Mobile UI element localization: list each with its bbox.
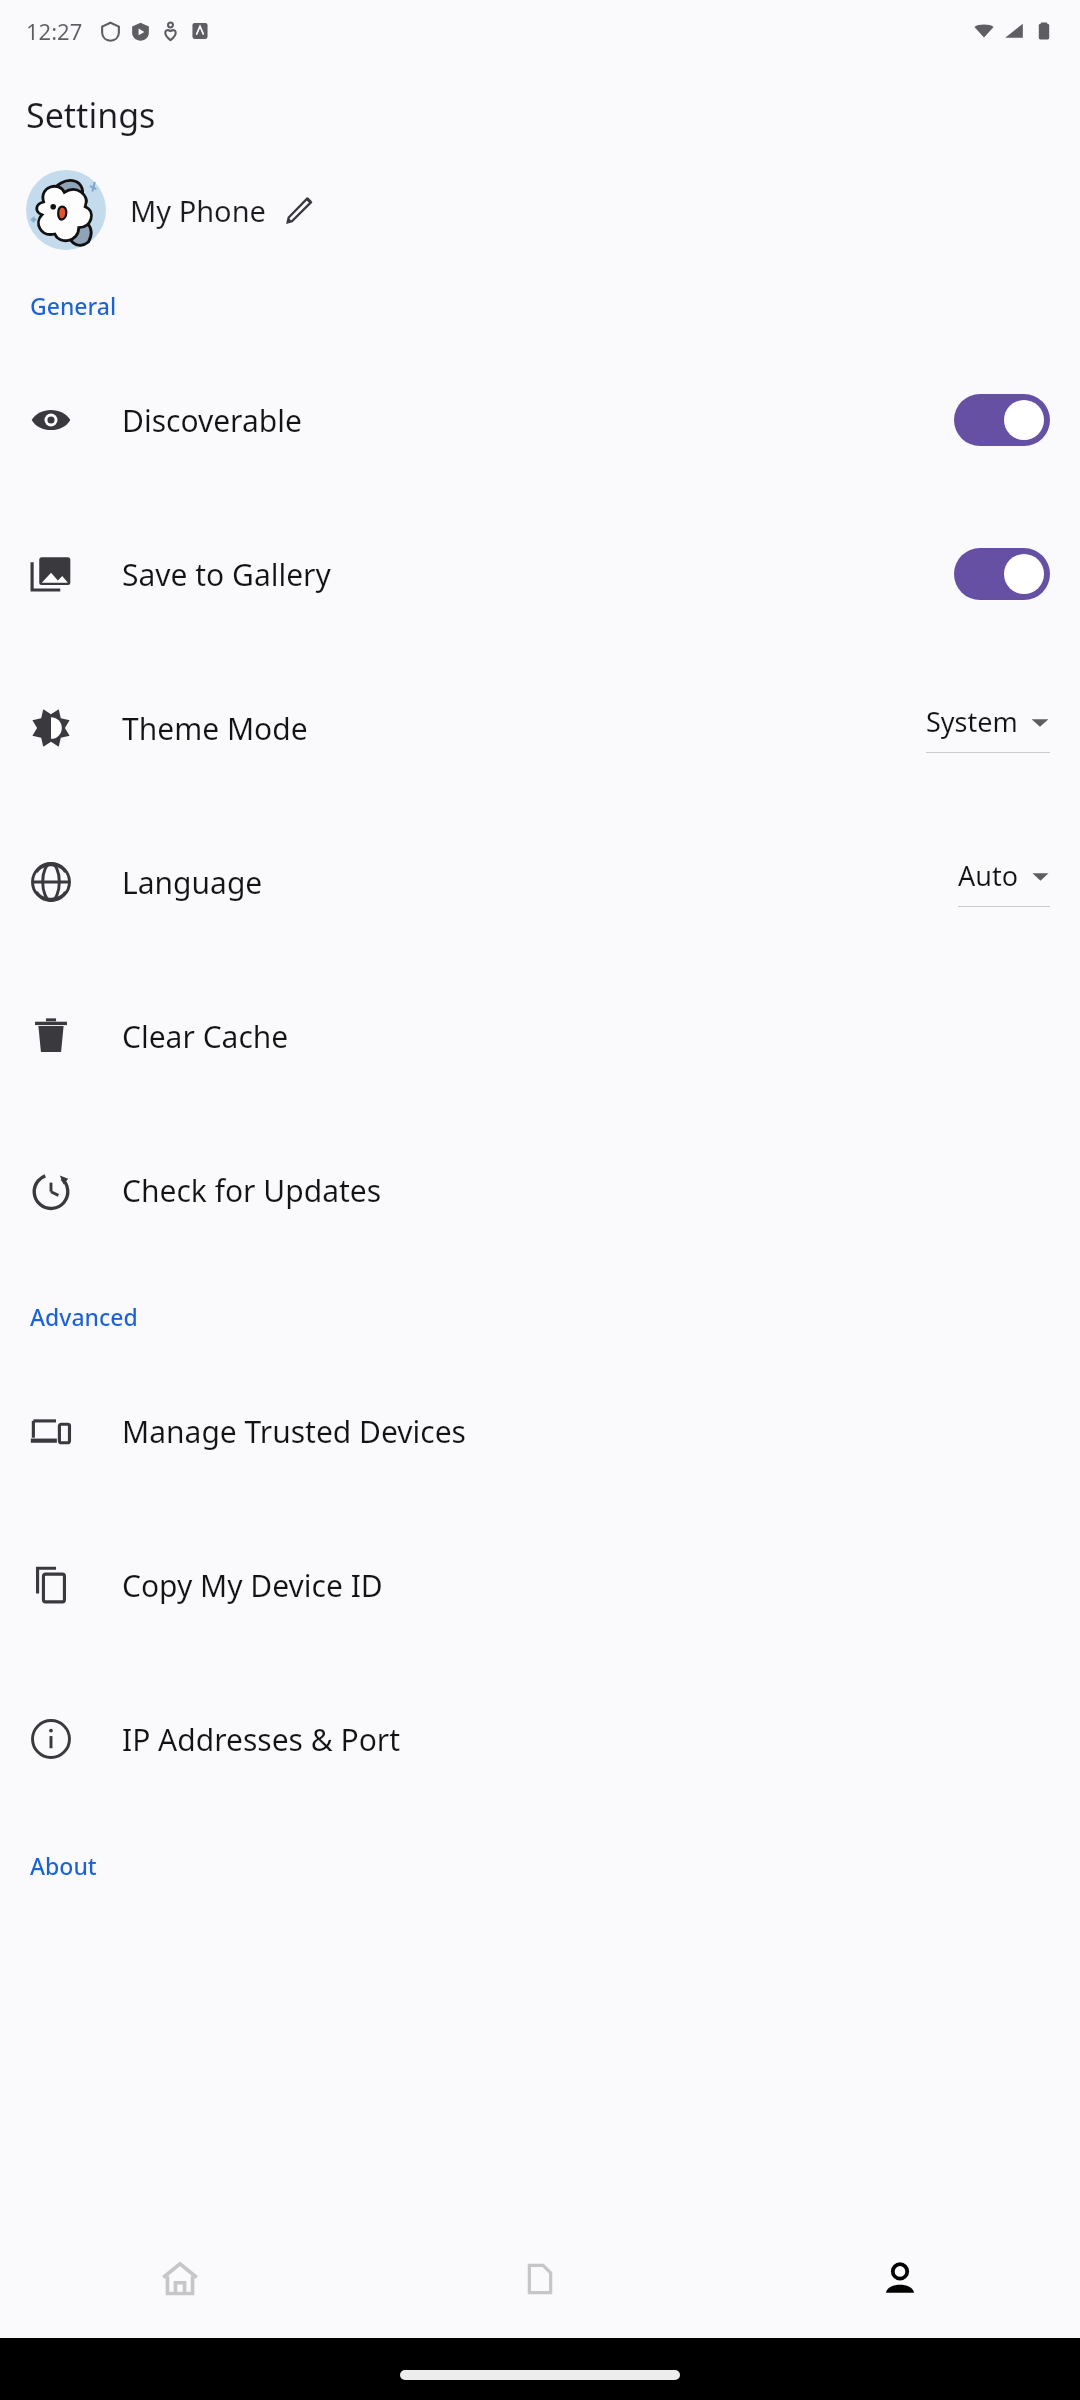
button[interactable]: Clear Cache xyxy=(0,959,1080,1113)
button[interactable]: Check for Updates xyxy=(0,1113,1080,1267)
button[interactable]: Toggle xyxy=(954,548,1050,600)
staticText: Language xyxy=(122,862,958,903)
button[interactable]: Toggle xyxy=(954,394,1050,446)
staticText: System xyxy=(926,703,1018,740)
staticText: Clear Cache xyxy=(122,1016,1050,1057)
staticText: Auto xyxy=(958,857,1019,894)
staticText: Save to Gallery xyxy=(122,554,954,595)
button[interactable]: Home xyxy=(0,2220,360,2338)
button[interactable]: Auto xyxy=(958,857,1050,907)
button[interactable]: Profile xyxy=(720,2220,1080,2338)
button[interactable]: Files xyxy=(360,2220,720,2338)
staticText: Discoverable xyxy=(122,400,954,441)
button[interactable]: Discoverable xyxy=(0,343,1080,497)
staticText: Copy My Device ID xyxy=(122,1565,1050,1606)
staticText: Manage Trusted Devices xyxy=(122,1411,1050,1452)
button[interactable]: Theme Mode xyxy=(0,651,1080,805)
staticText: General xyxy=(30,290,117,321)
staticText: IP Addresses & Port xyxy=(122,1719,1050,1760)
staticText: Theme Mode xyxy=(122,708,926,749)
staticText: My Phone xyxy=(130,191,266,230)
button[interactable]: Manage Trusted Devices xyxy=(0,1354,1080,1508)
button[interactable]: Language xyxy=(0,805,1080,959)
button[interactable]: Save to Gallery xyxy=(0,497,1080,651)
button[interactable]: Copy My Device ID xyxy=(0,1508,1080,1662)
staticText: Advanced xyxy=(30,1301,138,1332)
button[interactable]: Edit device name xyxy=(282,193,316,227)
staticText: About xyxy=(30,1850,97,1881)
staticText: 12:27 xyxy=(26,16,83,46)
button[interactable]: My Phone xyxy=(26,170,1054,250)
staticText: Settings xyxy=(26,92,156,138)
button[interactable]: System xyxy=(926,703,1050,753)
button[interactable]: IP Addresses & Port xyxy=(0,1662,1080,1816)
staticText: Check for Updates xyxy=(122,1170,1050,1211)
